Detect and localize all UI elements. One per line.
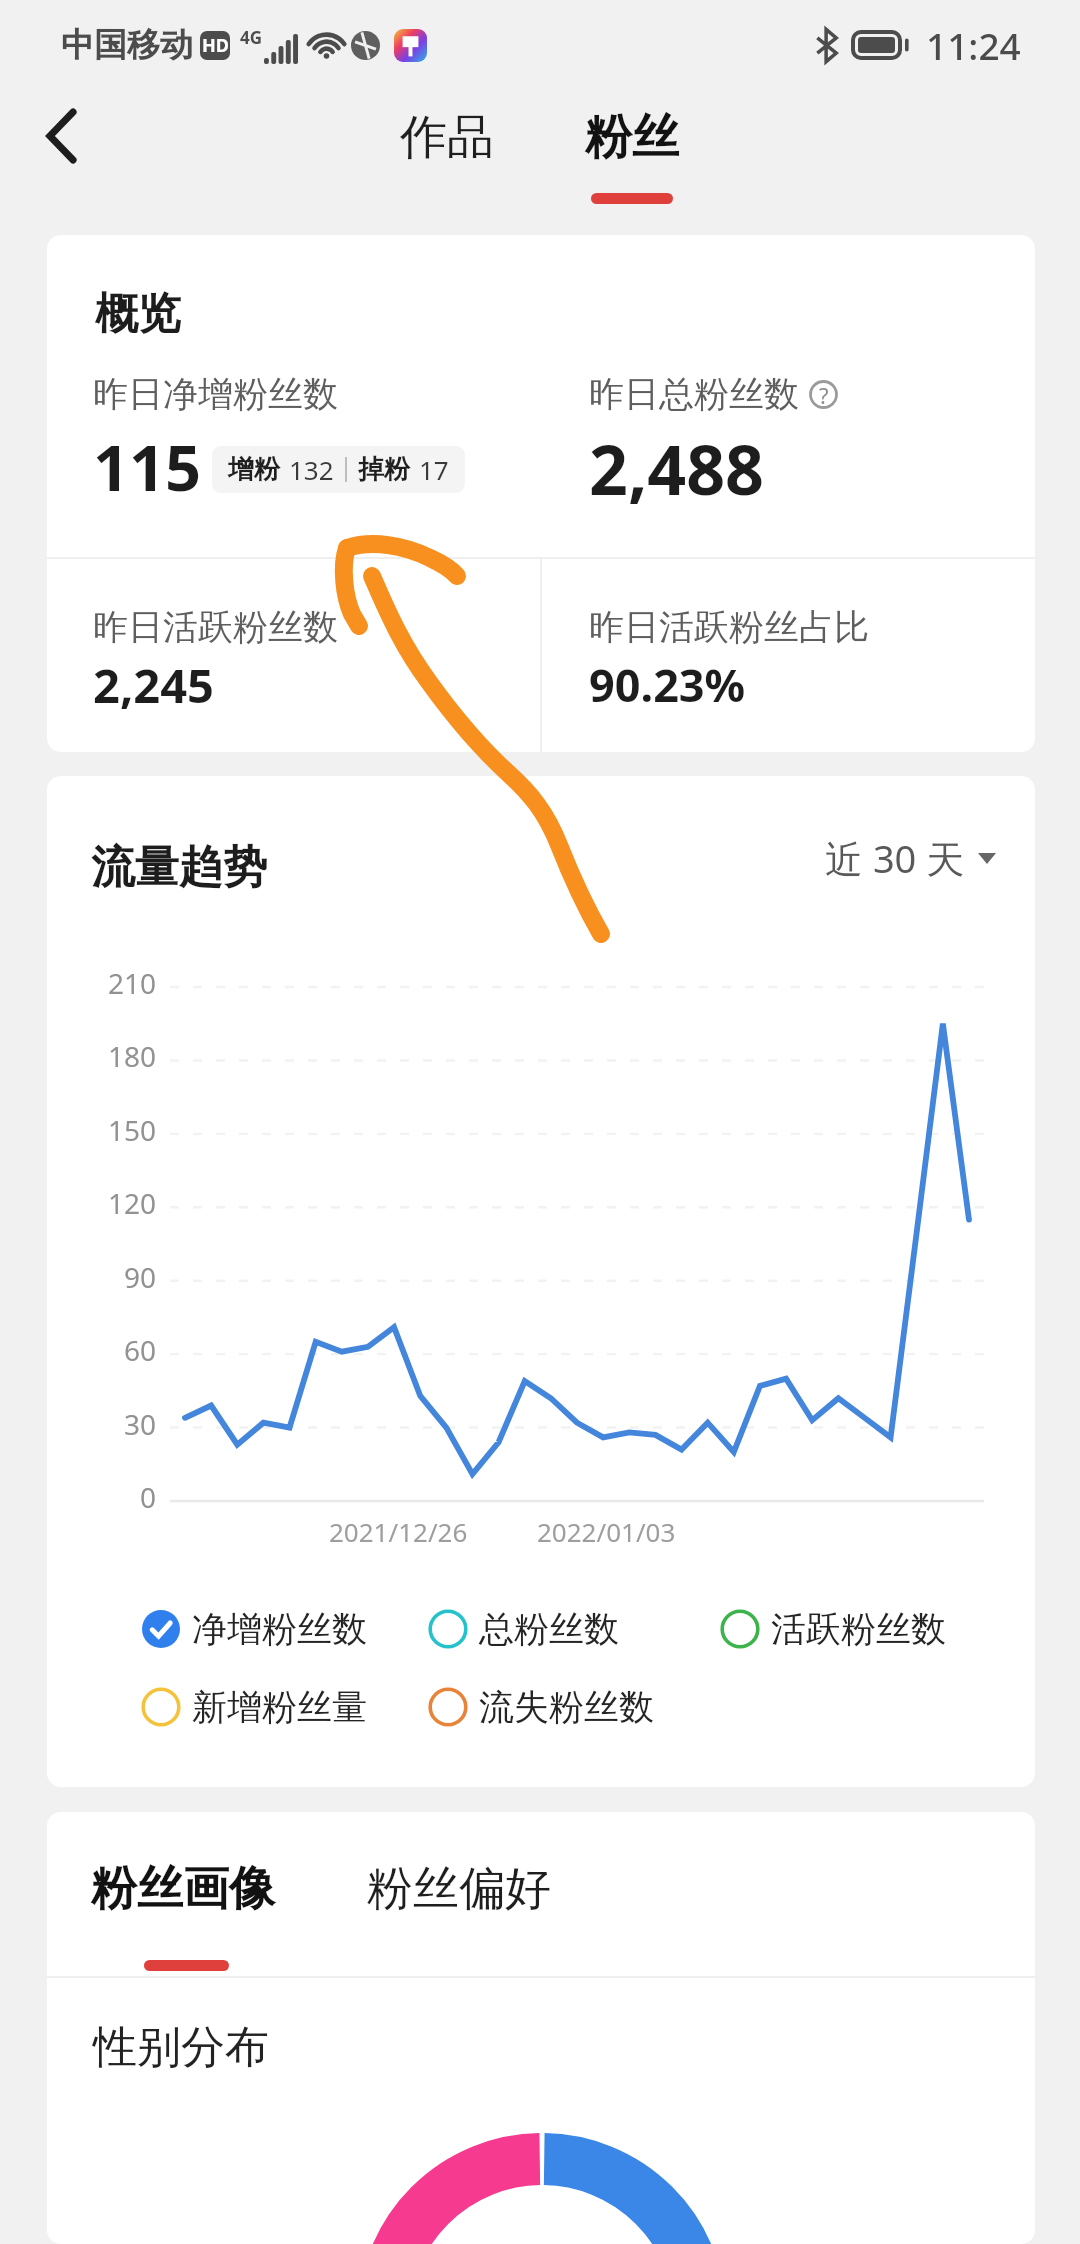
staticText: ? <box>819 380 829 409</box>
staticText: 概览 <box>95 287 181 341</box>
button[interactable]: 总粉丝数 <box>428 1603 619 1655</box>
button[interactable]: 粉丝 <box>569 98 695 177</box>
staticText: 115 <box>93 424 202 510</box>
staticText: 90.23% <box>589 654 746 715</box>
staticText: 2,488 <box>589 422 764 515</box>
staticText: 净增粉丝数 <box>192 1607 367 1651</box>
button[interactable]: 净增粉丝数 <box>141 1603 367 1655</box>
staticText: 30 <box>124 1405 157 1443</box>
staticText: 流失粉丝数 <box>479 1685 654 1729</box>
staticText: 180 <box>108 1037 157 1075</box>
staticText: 2,245 <box>93 653 214 717</box>
staticText: 增粉 <box>228 453 280 486</box>
staticText: 132 <box>289 452 334 487</box>
staticText: 粉丝偏好 <box>367 1860 551 1918</box>
button[interactable]: 活跃粉丝数 <box>720 1603 946 1655</box>
button[interactable]: Help <box>809 380 838 409</box>
staticText: 210 <box>108 964 157 1002</box>
staticText: 新增粉丝量 <box>192 1685 367 1729</box>
staticText: 流量趋势 <box>91 840 267 895</box>
staticText: 120 <box>108 1184 157 1222</box>
staticText: 11:24 <box>926 20 1021 70</box>
staticText: 17 <box>419 452 449 487</box>
staticText: 昨日总粉丝数 <box>589 372 799 416</box>
button[interactable]: 粉丝偏好 <box>351 1850 567 1928</box>
staticText: 近 30 天 <box>825 832 965 884</box>
staticText: 昨日活跃粉丝占比 <box>589 605 869 649</box>
staticText: 60 <box>124 1331 157 1369</box>
staticText: 4G <box>240 26 263 49</box>
staticText: 作品 <box>400 108 494 167</box>
staticText: 2022/01/03 <box>537 1514 676 1549</box>
staticText: 性别分布 <box>93 2020 269 2075</box>
button[interactable]: Back <box>11 86 111 186</box>
staticText: 昨日净增粉丝数 <box>93 372 338 416</box>
button[interactable]: 粉丝画像 <box>75 1850 291 1928</box>
button[interactable]: 新增粉丝量 <box>141 1681 367 1733</box>
staticText: 0 <box>140 1478 157 1516</box>
staticText: 150 <box>108 1111 157 1149</box>
staticText: 昨日活跃粉丝数 <box>93 605 338 649</box>
staticText: 90 <box>124 1258 157 1296</box>
button[interactable]: 流失粉丝数 <box>428 1681 654 1733</box>
staticText: 中国移动 <box>61 24 193 66</box>
staticText: 掉粉 <box>358 453 410 486</box>
button[interactable]: 近 30 天 <box>817 824 1004 892</box>
button[interactable]: 作品 <box>384 98 510 177</box>
staticText: 总粉丝数 <box>479 1607 619 1651</box>
staticText: HD <box>202 33 229 58</box>
staticText: 粉丝画像 <box>91 1860 275 1918</box>
staticText: 粉丝 <box>585 108 679 167</box>
staticText: 2021/12/26 <box>329 1514 468 1549</box>
staticText: 活跃粉丝数 <box>771 1607 946 1651</box>
